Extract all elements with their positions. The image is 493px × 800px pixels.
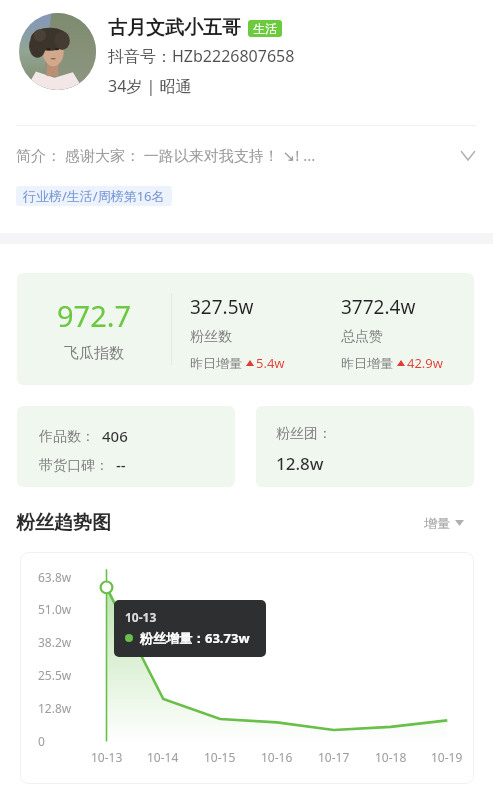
staticText: 327.5w xyxy=(190,294,254,320)
staticText: 粉丝团： xyxy=(276,425,332,443)
staticText: 12.8w xyxy=(276,452,324,475)
staticText: 行业榜/生活/周榜第16名 xyxy=(23,187,165,205)
staticText: 带货口碑： xyxy=(39,457,109,475)
staticText: 3772.4w xyxy=(341,294,416,320)
staticText: 增量 xyxy=(424,515,450,531)
staticText: 63.8w xyxy=(38,569,72,585)
staticText: 粉丝增量：63.73w xyxy=(140,629,250,647)
staticText: 昨日增量 xyxy=(190,355,242,371)
staticText: 10-17 xyxy=(318,749,350,765)
staticText: 10-16 xyxy=(261,749,293,765)
staticText: 古月文武小五哥 xyxy=(108,16,241,40)
staticText: 5.4w xyxy=(256,354,285,372)
staticText: 42.9w xyxy=(407,354,444,372)
button[interactable]: 粉丝团： xyxy=(256,406,474,487)
staticText: 抖音号：HZb2226807658 xyxy=(108,45,295,67)
button[interactable]: 增量 xyxy=(424,515,464,531)
staticText: 972.7 xyxy=(57,296,132,335)
staticText: 10-18 xyxy=(375,749,407,765)
button[interactable]: 作品数： xyxy=(17,406,235,487)
staticText: 作品数： xyxy=(39,428,95,446)
button[interactable]: 生活 xyxy=(248,20,282,37)
staticText: 飞瓜指数 xyxy=(64,344,124,363)
staticText: 51.0w xyxy=(38,601,72,617)
staticText: 38.2w xyxy=(38,634,72,650)
staticText: 生活 xyxy=(253,21,277,36)
button[interactable]: 简介： 感谢大家： 一路以来对我支持！ ↘! ... xyxy=(0,141,493,169)
staticText: 简介： 感谢大家： 一路以来对我支持！ ↘! ... xyxy=(16,145,461,165)
staticText: 粉丝趋势图 xyxy=(16,511,111,535)
staticText: -- xyxy=(116,455,126,475)
staticText: 10-13 xyxy=(125,609,157,625)
staticText: 总点赞 xyxy=(341,328,383,346)
button[interactable]: 行业榜/生活/周榜第16名 xyxy=(16,186,172,206)
staticText: 0 xyxy=(38,733,45,749)
staticText: 12.8w xyxy=(38,700,72,716)
staticText: 10-19 xyxy=(431,749,463,765)
staticText: 34岁 | 昭通 xyxy=(108,75,192,97)
other: Expand bio xyxy=(461,151,475,160)
staticText: 10-13 xyxy=(91,749,123,765)
staticText: 粉丝数 xyxy=(190,328,232,346)
staticText: 10-14 xyxy=(147,749,179,765)
staticText: 25.5w xyxy=(38,667,72,683)
staticText: 昨日增量 xyxy=(341,355,393,371)
button[interactable]: 972.7 xyxy=(17,273,474,385)
staticText: 10-15 xyxy=(204,749,236,765)
staticText: 406 xyxy=(102,426,128,446)
button[interactable]: Profile photo xyxy=(19,13,96,90)
